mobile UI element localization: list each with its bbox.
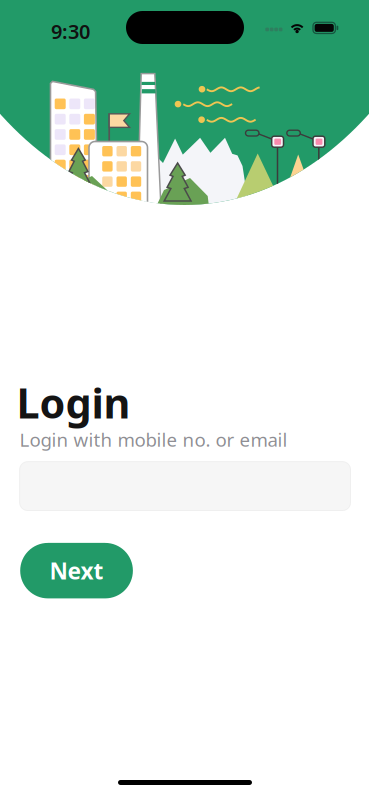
button[interactable]: Next — [20, 543, 133, 598]
staticText: Login — [16, 375, 130, 430]
staticText: Login with mobile no. or email — [19, 427, 287, 452]
staticText: 9:30 — [51, 18, 90, 45]
staticText: Next — [49, 556, 103, 586]
